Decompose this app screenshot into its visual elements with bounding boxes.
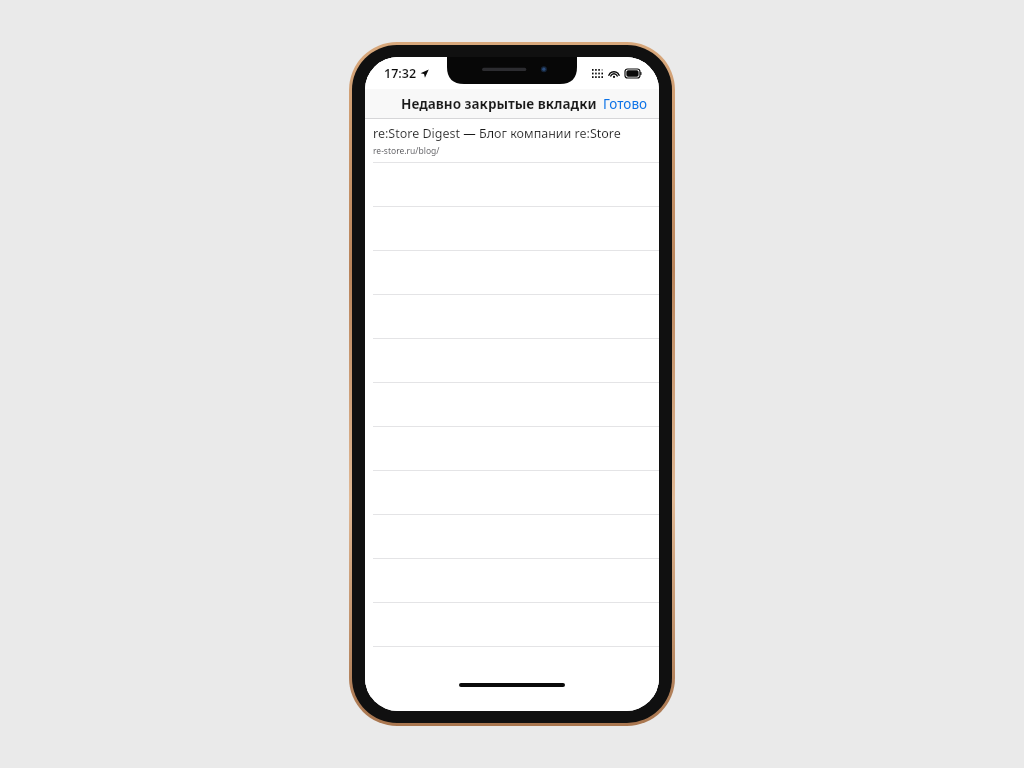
- button[interactable]: [365, 515, 659, 559]
- staticText: re:Store Digest — Блог компании re:Store: [373, 125, 621, 142]
- staticText: 17:32: [384, 65, 417, 82]
- button[interactable]: re:Store Digest — Блог компании re:Store: [365, 119, 659, 163]
- button[interactable]: [365, 383, 659, 427]
- button[interactable]: [365, 471, 659, 515]
- button[interactable]: Готово: [602, 93, 649, 115]
- button[interactable]: [365, 295, 659, 339]
- button[interactable]: [365, 559, 659, 603]
- staticText: Недавно закрытые вкладки: [401, 95, 597, 113]
- button[interactable]: [365, 163, 659, 207]
- staticText: re-store.ru/blog/: [373, 145, 440, 157]
- button[interactable]: [365, 427, 659, 471]
- button[interactable]: [365, 603, 659, 647]
- button[interactable]: [365, 251, 659, 295]
- button[interactable]: [365, 207, 659, 251]
- staticText: Готово: [603, 95, 648, 113]
- button[interactable]: [365, 339, 659, 383]
